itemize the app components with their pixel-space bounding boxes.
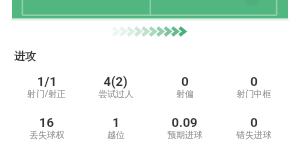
staticText: 射门中框	[236, 89, 272, 100]
staticText: 1	[112, 115, 120, 130]
button[interactable]: 0.09	[150, 115, 219, 141]
staticText: 0.09	[171, 115, 198, 130]
staticText: 0	[250, 115, 258, 130]
button[interactable]: 1	[81, 115, 150, 141]
button[interactable]: 16	[12, 115, 81, 141]
staticText: 0	[181, 74, 189, 89]
button[interactable]: 0	[219, 74, 288, 100]
staticText: 0	[250, 74, 258, 89]
button[interactable]: 4(2)	[81, 74, 150, 100]
staticText: 预期进球	[167, 130, 203, 141]
staticText: 4(2)	[103, 74, 128, 89]
button[interactable]: 进攻	[0, 49, 300, 63]
staticText: 1/1	[37, 74, 57, 89]
button[interactable]: 1/1	[12, 74, 81, 100]
staticText: 进攻	[14, 49, 36, 63]
staticText: 丢失球权	[29, 130, 65, 141]
button[interactable]: 0	[150, 74, 219, 100]
staticText: 射偏	[176, 89, 194, 100]
other: Attack momentum	[113, 26, 187, 37]
staticText: 错失进球	[236, 130, 272, 141]
staticText: 16	[39, 115, 54, 130]
staticText: 尝试过人	[98, 89, 134, 100]
staticText: 射门/射正	[27, 89, 66, 100]
button[interactable]: 0	[219, 115, 288, 141]
other: Match summary card	[0, 0, 300, 150]
staticText: 越位	[107, 130, 125, 141]
